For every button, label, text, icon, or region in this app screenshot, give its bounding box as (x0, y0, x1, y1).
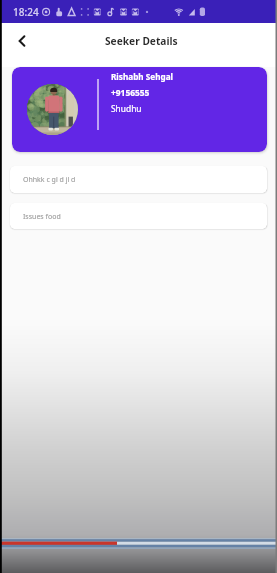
staticText: 18:24 (13, 5, 39, 19)
staticText: Issues food (23, 212, 61, 222)
staticText: Ohhkk c gl d jl d (23, 175, 76, 185)
staticText: Seeker Details (105, 34, 178, 48)
button[interactable]: Issues food (10, 203, 267, 229)
button[interactable]: Rishabh Sehgal (12, 67, 267, 152)
button[interactable]: Back (9, 28, 35, 54)
staticText: +9156555 (111, 87, 150, 98)
staticText: Rishabh Sehgal (111, 71, 174, 82)
staticText: Shudhu (111, 103, 142, 114)
button[interactable]: Ohhkk c gl d jl d (10, 166, 267, 193)
